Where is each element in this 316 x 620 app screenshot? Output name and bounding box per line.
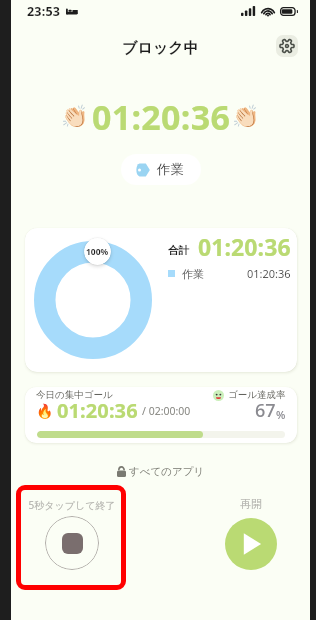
staticText: 👏🏻 bbox=[61, 104, 89, 130]
button[interactable]: Stop bbox=[45, 516, 99, 570]
staticText: 今日の集中ゴール bbox=[36, 389, 113, 401]
staticText: 67 bbox=[255, 398, 276, 423]
staticText: ブロック中 bbox=[122, 39, 199, 58]
staticText: 再開 bbox=[226, 497, 276, 511]
button[interactable]: Resume bbox=[225, 518, 277, 570]
button[interactable]: 今日の集中ゴール bbox=[25, 387, 297, 443]
staticText: ゴール達成率 bbox=[228, 389, 286, 401]
staticText: 01:20:36 bbox=[198, 231, 291, 262]
staticText: / 02:00:00 bbox=[142, 404, 191, 418]
button[interactable]: すべてのアプリ bbox=[117, 465, 205, 478]
staticText: 5秒タップして終了 bbox=[27, 498, 117, 512]
button[interactable]: Settings bbox=[276, 35, 298, 57]
staticText: 01:20:36 bbox=[247, 266, 291, 281]
staticText: 作業 bbox=[182, 267, 204, 281]
staticText: 🔥 bbox=[36, 403, 54, 419]
button[interactable]: 作業 bbox=[121, 154, 201, 185]
staticText: 23:53 bbox=[27, 3, 61, 20]
staticText: 合計 bbox=[168, 244, 189, 257]
staticText: すべてのアプリ bbox=[129, 465, 205, 478]
staticText: 作業 bbox=[157, 161, 184, 178]
staticText: % bbox=[276, 407, 286, 422]
staticText: 👏🏻 bbox=[232, 104, 260, 130]
staticText: 01:20:36 bbox=[92, 94, 231, 140]
staticText: 100% bbox=[86, 246, 109, 258]
button[interactable]: 100% bbox=[25, 228, 297, 372]
staticText: 01:20:36 bbox=[57, 397, 138, 424]
